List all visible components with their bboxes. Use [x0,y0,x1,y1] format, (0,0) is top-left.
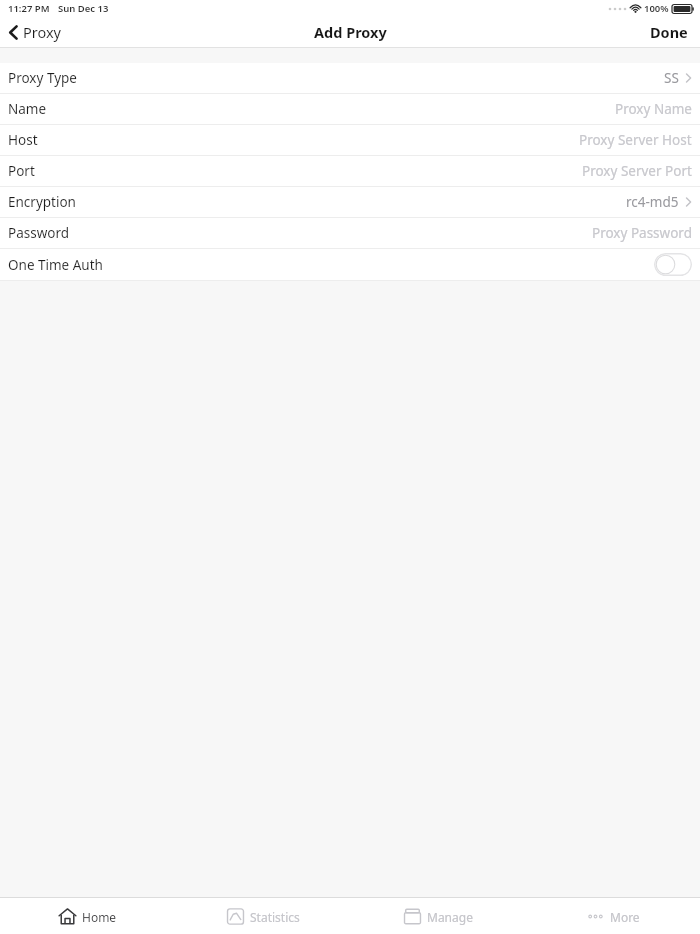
staticText: Password [8,224,70,242]
staticText: Sun Dec 13 [58,2,109,15]
button[interactable]: Port [0,156,700,186]
button[interactable]: One Time Auth toggle [654,253,692,276]
staticText: Proxy Type [8,69,77,87]
staticText: Proxy Server Host [579,131,692,149]
button[interactable]: More [525,898,700,934]
staticText: Proxy [23,22,62,42]
staticText: 100% [644,2,669,15]
staticText: Statistics [250,909,300,925]
staticText: rc4-md5 [626,193,679,211]
button[interactable]: Host [0,125,700,155]
staticText: Port [8,162,35,180]
button[interactable]: Manage [350,898,525,934]
button[interactable]: Home [0,898,175,934]
staticText: Home [82,909,117,925]
staticText: Add Proxy [314,22,387,42]
staticText: Proxy Server Port [582,162,692,180]
button[interactable]: Password [0,218,700,248]
staticText: SS [664,69,679,87]
staticText: Encryption [8,193,76,211]
staticText: Manage [427,909,473,925]
staticText: Proxy Name [615,100,692,118]
staticText: Name [8,100,47,118]
button[interactable]: Encryption [0,187,700,217]
button[interactable]: Proxy Type [0,63,700,93]
button[interactable]: Done [638,17,700,47]
button[interactable]: One Time Auth [0,249,700,280]
button[interactable]: Proxy [0,18,72,46]
staticText: More [610,909,640,925]
staticText: 11:27 PM [8,2,50,15]
staticText: Host [8,131,38,149]
staticText: Done [650,22,688,42]
button[interactable]: Statistics [175,898,350,934]
staticText: Proxy Password [592,224,692,242]
staticText: One Time Auth [8,256,103,274]
button[interactable]: Name [0,94,700,124]
